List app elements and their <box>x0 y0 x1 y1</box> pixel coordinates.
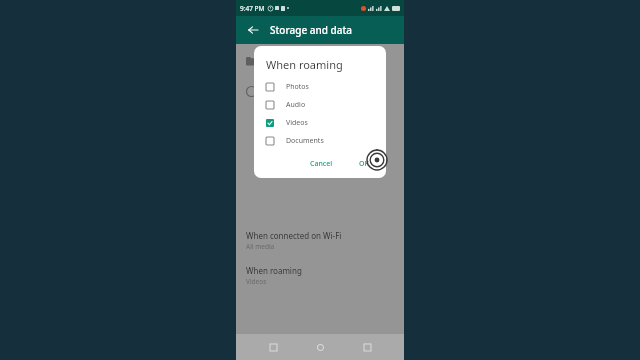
staticText: Network usage <box>267 86 324 97</box>
button[interactable]: Audio <box>266 100 378 110</box>
button[interactable]: Home <box>310 337 330 357</box>
button[interactable]: Documents <box>266 136 378 146</box>
staticText: Cancel <box>310 159 333 169</box>
staticText: Videos <box>286 118 308 128</box>
button[interactable]: When connected on Wi-Fi <box>246 230 404 251</box>
button[interactable]: Back <box>263 337 283 357</box>
button[interactable]: Cancel <box>305 155 338 173</box>
staticText: Audio <box>286 100 306 110</box>
button[interactable]: Recent apps <box>357 337 377 357</box>
button[interactable]: Network usage <box>236 86 404 97</box>
staticText: OK <box>359 159 369 169</box>
button[interactable]: When roaming <box>246 265 404 286</box>
staticText: All media <box>246 242 275 251</box>
staticText: When roaming <box>266 57 343 72</box>
button[interactable]: Photos <box>266 82 378 92</box>
staticText: Storage and data <box>270 23 352 37</box>
button[interactable]: OK <box>354 155 374 173</box>
button[interactable]: Videos <box>266 118 378 128</box>
staticText: Photos <box>286 82 309 92</box>
button[interactable]: Manage storage <box>236 49 404 73</box>
staticText: Videos <box>246 277 267 286</box>
staticText: Documents <box>286 136 324 146</box>
staticText: When connected on Wi-Fi <box>246 230 342 241</box>
button[interactable]: Back <box>244 21 262 39</box>
staticText: Manage storage <box>267 53 329 64</box>
staticText: 78 kB <box>267 65 283 73</box>
staticText: 9:47 PM <box>240 4 265 13</box>
staticText: When roaming <box>246 265 302 276</box>
